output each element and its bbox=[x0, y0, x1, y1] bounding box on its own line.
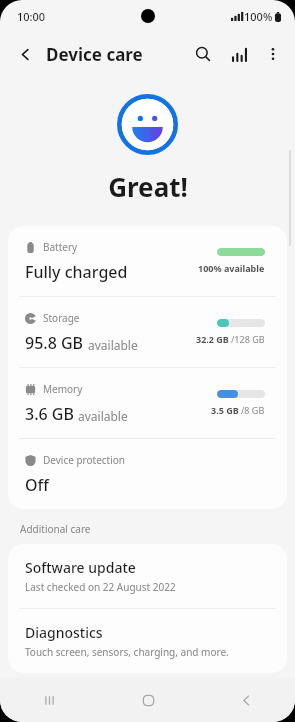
button[interactable]: Search bbox=[187, 38, 219, 70]
staticText: 32.2 GB bbox=[196, 333, 229, 345]
button[interactable]: Back bbox=[197, 678, 295, 722]
staticText: Software update bbox=[25, 558, 136, 577]
button[interactable]: More options bbox=[257, 38, 289, 70]
staticText: Touch screen, sensors, charging, and mor… bbox=[25, 645, 229, 659]
button[interactable]: Diagnostics bbox=[8, 609, 287, 673]
staticText: Off bbox=[25, 474, 49, 496]
staticText: 3.5 GB bbox=[211, 404, 239, 416]
staticText: Fully charged bbox=[25, 261, 128, 283]
staticText: /8 GB bbox=[241, 404, 265, 416]
button[interactable]: Recent apps bbox=[0, 678, 99, 722]
staticText: 95.8 GB bbox=[25, 332, 84, 354]
button[interactable]: Device protection bbox=[8, 439, 287, 509]
button[interactable]: Home bbox=[99, 678, 197, 722]
staticText: Last checked on 22 August 2022 bbox=[25, 580, 176, 594]
staticText: 10:00 bbox=[17, 9, 46, 24]
staticText: /128 GB bbox=[231, 333, 265, 345]
button[interactable]: Usage statistics bbox=[223, 38, 255, 70]
button[interactable]: Software update bbox=[8, 544, 287, 608]
staticText: Device care bbox=[46, 43, 143, 66]
staticText: 3.6 GB bbox=[25, 403, 74, 425]
staticText: Battery bbox=[43, 240, 78, 254]
button[interactable]: Storage bbox=[8, 297, 287, 367]
staticText: Device protection bbox=[43, 453, 126, 467]
staticText: Great! bbox=[108, 169, 188, 204]
staticText: Memory bbox=[43, 382, 83, 396]
staticText: Storage bbox=[43, 311, 80, 325]
button[interactable]: Back bbox=[8, 37, 42, 71]
staticText: 100% bbox=[244, 9, 273, 24]
staticText: Additional care bbox=[20, 522, 91, 536]
staticText: available bbox=[78, 408, 128, 424]
button[interactable]: Memory bbox=[8, 368, 287, 438]
button[interactable]: Battery bbox=[8, 226, 287, 296]
staticText: Diagnostics bbox=[25, 623, 103, 642]
staticText: available bbox=[88, 337, 138, 353]
staticText: 100% available bbox=[198, 262, 265, 274]
